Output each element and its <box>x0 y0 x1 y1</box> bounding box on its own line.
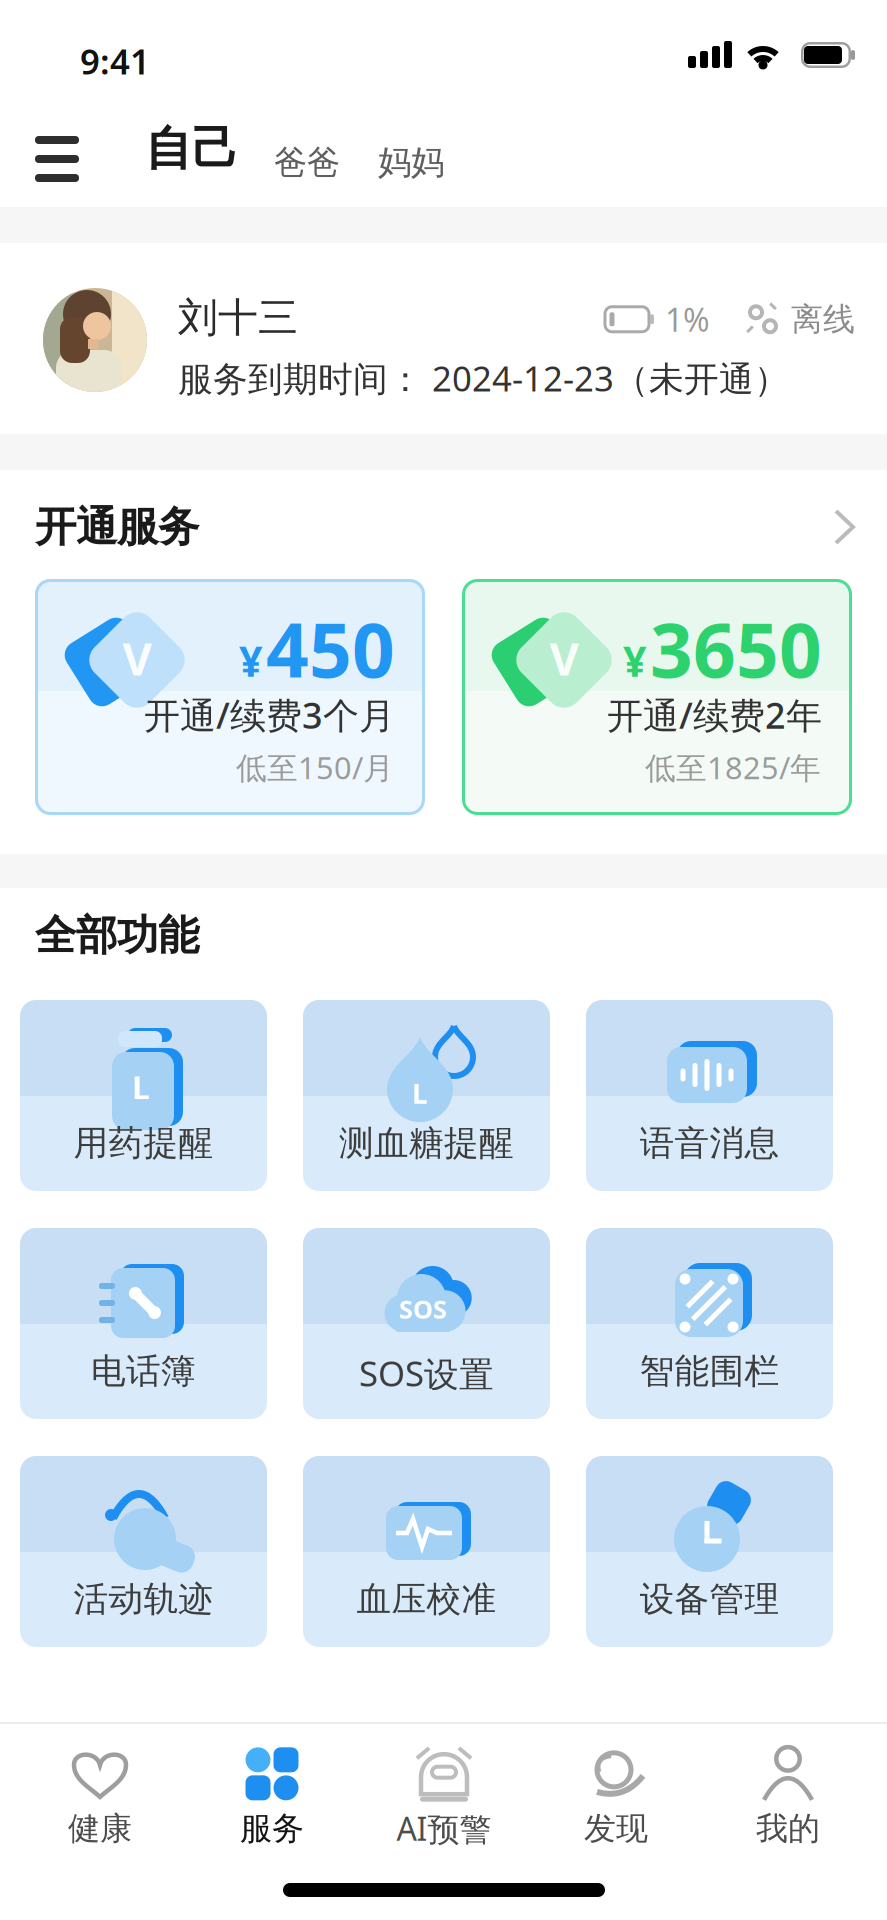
staticText: 语音消息 <box>639 1122 779 1165</box>
staticText: 450 <box>266 599 395 698</box>
staticText: 1% <box>665 298 710 340</box>
staticText: 我的 <box>756 1809 820 1848</box>
button[interactable]: SOS <box>303 1228 550 1419</box>
button[interactable]: V <box>35 579 425 815</box>
button[interactable]: 健康 <box>14 1738 186 1856</box>
button[interactable]: 刘十三 <box>0 243 887 434</box>
staticText: 服务 <box>240 1809 304 1848</box>
button[interactable]: 妈妈 <box>378 142 444 183</box>
staticText: 爸爸 <box>274 142 340 183</box>
staticText: 用药提醒 <box>73 1122 213 1165</box>
button[interactable]: V <box>462 579 852 815</box>
button[interactable]: 血压校准 <box>303 1456 550 1647</box>
staticText: V <box>122 628 151 688</box>
staticText: 健康 <box>68 1809 132 1848</box>
staticText: 9:41 <box>80 38 150 84</box>
staticText: SOS设置 <box>359 1350 494 1396</box>
staticText: V <box>549 628 578 688</box>
staticText: 设备管理 <box>639 1578 779 1621</box>
button[interactable]: 发现 <box>530 1738 702 1856</box>
button[interactable]: 自己 <box>145 120 239 177</box>
button[interactable]: 我的 <box>702 1738 874 1856</box>
button[interactable]: 活动轨迹 <box>20 1456 267 1647</box>
staticText: 测血糖提醒 <box>339 1122 514 1165</box>
staticText: AI预警 <box>396 1807 491 1850</box>
button[interactable]: 开通服务 <box>0 496 887 558</box>
staticText: 服务到期时间： 2024-12-23（未开通） <box>178 355 789 401</box>
staticText: 开通服务 <box>35 502 199 552</box>
button[interactable]: AI预警 <box>358 1738 530 1856</box>
button[interactable]: 爸爸 <box>274 142 340 183</box>
button[interactable]: Menu <box>25 126 89 192</box>
staticText: L <box>132 1066 150 1108</box>
staticText: 智能围栏 <box>639 1350 779 1393</box>
staticText: 全部功能 <box>35 910 199 961</box>
button[interactable]: 电话簿 <box>20 1228 267 1419</box>
button[interactable]: 服务 <box>186 1738 358 1856</box>
staticText: 活动轨迹 <box>73 1578 213 1621</box>
button[interactable]: 语音消息 <box>586 1000 833 1191</box>
staticText: 刘十三 <box>178 293 298 342</box>
staticText: L <box>412 1074 428 1112</box>
staticText: 自己 <box>145 120 239 177</box>
button[interactable]: 设备管理 <box>586 1456 833 1647</box>
button[interactable]: 智能围栏 <box>586 1228 833 1419</box>
staticText: 妈妈 <box>378 142 444 183</box>
staticText: 低至1825/年 <box>645 747 821 788</box>
staticText: 低至150/月 <box>236 747 394 788</box>
staticText: 开通/续费3个月 <box>144 691 395 739</box>
staticText: 电话簿 <box>91 1350 196 1393</box>
staticText: 开通/续费2年 <box>607 691 822 739</box>
button[interactable]: L <box>303 1000 550 1191</box>
staticText: 离线 <box>791 300 855 339</box>
staticText: 3650 <box>650 599 822 698</box>
staticText: ¥ <box>239 633 263 688</box>
button[interactable]: L <box>20 1000 267 1191</box>
staticText: 发现 <box>584 1809 648 1848</box>
staticText: SOS <box>399 1292 447 1326</box>
staticText: 血压校准 <box>356 1578 496 1621</box>
staticText: ¥ <box>623 633 647 688</box>
